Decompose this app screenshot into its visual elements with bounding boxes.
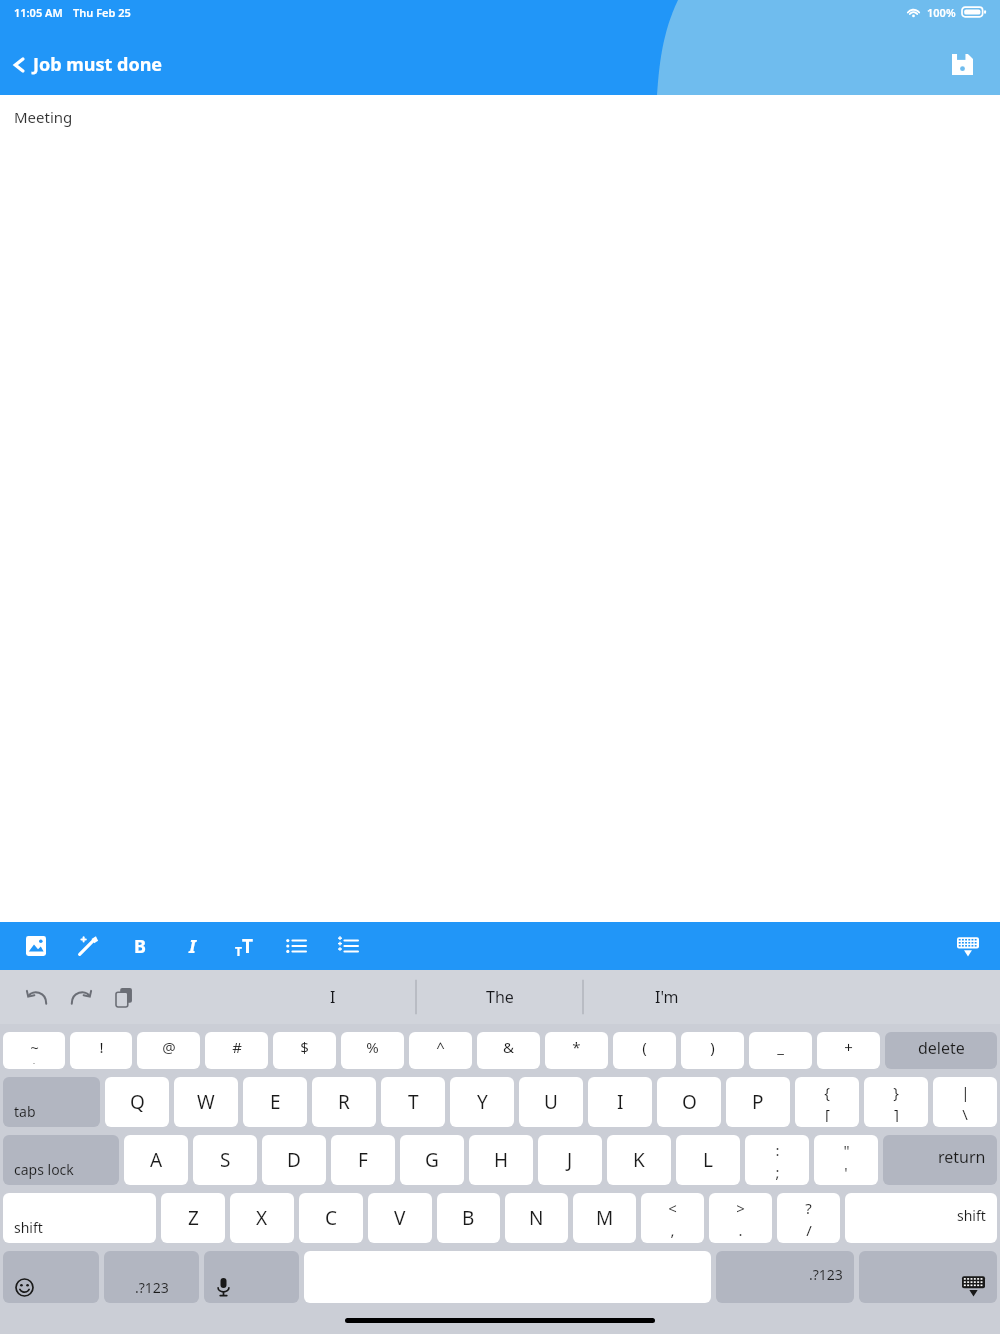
button[interactable]: " [814,1135,878,1185]
button[interactable]: ? [777,1193,840,1243]
button[interactable]: delete [885,1032,997,1069]
button[interactable]: _ [749,1032,812,1069]
staticText: X [256,1205,268,1231]
staticText: # [232,1037,242,1057]
button[interactable]: kbdown [859,1251,997,1303]
button[interactable]: return [883,1135,997,1185]
staticText: 11:05 AM [14,5,63,20]
button[interactable]: { [795,1077,859,1127]
staticText: ' [844,1162,848,1180]
staticText: < [668,1198,677,1218]
button[interactable]: X [230,1193,294,1243]
staticText: T [408,1089,419,1115]
button[interactable]: ~ [3,1032,65,1069]
button[interactable]: ( [613,1032,676,1069]
button[interactable]: E [243,1077,307,1127]
button[interactable]: Save [938,40,986,88]
button[interactable]: * [545,1032,608,1069]
button[interactable]: Q [105,1077,169,1127]
button[interactable]: > [709,1193,772,1243]
button[interactable]: P [726,1077,790,1127]
staticText: Job must done [33,52,163,77]
button[interactable]: W [174,1077,238,1127]
button[interactable]: M [573,1193,636,1243]
staticText: tab [14,1102,36,1121]
button[interactable]: I'm [583,970,750,1024]
button[interactable]: : [745,1135,809,1185]
button[interactable]: Numbered list [324,922,372,970]
button[interactable]: % [341,1032,404,1069]
button[interactable]: U [519,1077,583,1127]
button[interactable]: F [331,1135,395,1185]
button[interactable]: R [312,1077,376,1127]
button[interactable]: V [368,1193,432,1243]
button[interactable]: The [416,970,583,1024]
button[interactable]: .?123 [104,1251,199,1303]
staticText: ; [775,1162,780,1180]
button[interactable]: D [262,1135,326,1185]
button[interactable]: B [437,1193,500,1243]
button[interactable]: S [193,1135,257,1185]
staticText: 100% [927,5,956,20]
button[interactable]: Y [450,1077,514,1127]
button[interactable]: ^ [409,1032,472,1069]
button[interactable]: Italic [168,922,216,970]
staticText: % [366,1037,379,1057]
button[interactable]: I [588,1077,652,1127]
button[interactable]: G [400,1135,464,1185]
button[interactable]: caps lock [3,1135,119,1185]
button[interactable]: Bold [116,922,164,970]
button[interactable]: Redo [60,976,102,1018]
button[interactable]: < [641,1193,704,1243]
button[interactable]: $ [273,1032,336,1069]
button[interactable]: shift [3,1193,156,1243]
button[interactable]: } [864,1077,928,1127]
staticText: return [938,1146,986,1168]
button[interactable]: ) [681,1032,744,1069]
button[interactable]: Z [161,1193,225,1243]
button[interactable]: tab [3,1077,100,1127]
button[interactable]: I [250,970,416,1024]
button[interactable]: Magic format [64,922,112,970]
button[interactable]: + [817,1032,880,1069]
button[interactable]: Bulleted list [272,922,320,970]
button[interactable]: K [607,1135,671,1185]
button[interactable]: Text size [220,922,268,970]
button[interactable]: # [205,1032,268,1069]
button[interactable]: Paste [104,976,146,1018]
button[interactable]: C [299,1193,363,1243]
staticText: / [806,1220,812,1238]
staticText: H [494,1147,509,1173]
button[interactable]: .?123 [716,1251,854,1303]
button[interactable]: N [505,1193,568,1243]
button[interactable]: Hide keyboard [946,924,990,968]
button[interactable]: Insert image [12,922,60,970]
button[interactable]: & [477,1032,540,1069]
staticText: T [235,943,242,959]
button[interactable]: @ [137,1032,200,1069]
staticText: M [596,1205,614,1231]
button[interactable]: O [657,1077,721,1127]
button[interactable]: Job must done [0,44,173,85]
staticText: I [330,986,336,1008]
button[interactable]: mic [204,1251,299,1303]
button[interactable]: J [538,1135,602,1185]
button[interactable]: T [381,1077,445,1127]
button[interactable]: emoji [3,1251,99,1303]
button[interactable]: A [124,1135,188,1185]
button[interactable]: H [469,1135,533,1185]
staticText: & [503,1037,514,1057]
button[interactable]: shift [845,1193,997,1243]
button[interactable]: L [676,1135,740,1185]
button[interactable]: ! [70,1032,132,1069]
staticText: L [703,1147,713,1173]
button[interactable]: | [933,1077,997,1127]
button[interactable]: Undo [16,976,58,1018]
